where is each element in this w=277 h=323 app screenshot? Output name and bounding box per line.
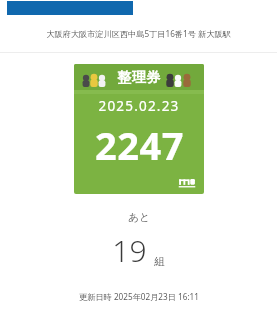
staticText: 組: [154, 255, 165, 268]
staticText: 19: [112, 230, 147, 271]
other: Logo: [178, 176, 196, 188]
staticText: 大阪府大阪市淀川区西中島5丁目16番1号 新大阪駅: [46, 28, 231, 39]
staticText: あと: [128, 211, 150, 224]
staticText: 更新日時 2025年02月23日 16:11: [79, 291, 199, 302]
staticText: 2247: [95, 119, 184, 171]
button[interactable]: 整理券: [74, 64, 204, 194]
staticText: 整理券: [117, 69, 161, 87]
staticText: 2025.02.23: [98, 97, 180, 115]
